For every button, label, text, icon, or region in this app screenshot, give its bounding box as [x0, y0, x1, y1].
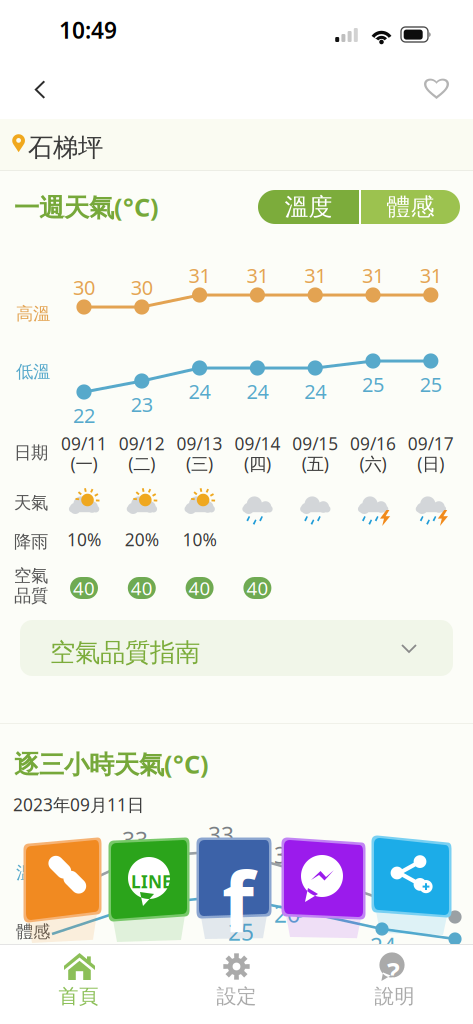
staticText: 31 [304, 262, 326, 289]
staticText: 一週天氣(°C) [14, 190, 159, 224]
staticText: (三) [186, 452, 213, 475]
staticText: 09/16 [350, 432, 396, 455]
staticText: 2023年09月11日 [13, 793, 144, 816]
staticText: 30 [73, 274, 95, 301]
staticText: 09/13 [177, 432, 223, 455]
staticText: 品質 [14, 585, 48, 606]
staticText: 24 [370, 931, 396, 961]
staticText: 23 [131, 391, 153, 418]
staticText: ? [387, 954, 400, 989]
button[interactable]: Share on Messenger [284, 840, 363, 919]
button[interactable]: 體感 [361, 190, 460, 224]
staticText: 10% [183, 528, 217, 551]
staticText: 降雨 [14, 531, 48, 552]
staticText: 體感 [16, 921, 50, 942]
staticText: 40 [73, 576, 95, 600]
staticText: 20% [125, 528, 159, 551]
button[interactable]: 空氣品質指南 [20, 620, 453, 676]
staticText: 30 [131, 274, 153, 301]
staticText: 25 [420, 371, 442, 398]
staticText: 說明 [374, 984, 414, 1009]
button[interactable]: Copy link [26, 838, 99, 922]
button[interactable]: Back [8, 62, 62, 114]
staticText: (一) [70, 452, 97, 475]
staticText: 設定 [216, 984, 256, 1009]
staticText: 日期 [14, 442, 48, 463]
staticText: 40 [246, 576, 268, 600]
staticText: 30 [274, 840, 300, 870]
staticText: 33 [122, 825, 148, 855]
staticText: 40 [189, 576, 211, 600]
staticText: 溫度 [284, 192, 332, 222]
staticText: 空氣品質指南 [50, 637, 200, 668]
button[interactable]: 溫度 [258, 190, 359, 224]
staticText: 首頁 [58, 984, 98, 1009]
staticText: 33 [208, 820, 234, 850]
staticText: 09/17 [408, 432, 454, 455]
button[interactable]: Share on Facebook [199, 838, 269, 918]
staticText: 高溫 [16, 303, 50, 324]
staticText: 石梯坪 [28, 132, 103, 163]
staticText: 40 [131, 576, 153, 600]
staticText: 31 [420, 262, 442, 289]
staticText: 22 [73, 402, 95, 429]
staticText: (日) [417, 452, 444, 475]
staticText: 10% [67, 528, 101, 551]
button[interactable]: More sharing options [374, 838, 449, 917]
staticText: 空氣 [14, 565, 48, 586]
staticText: f [222, 845, 254, 955]
button[interactable]: Share on LINE [111, 838, 187, 921]
staticText: (五) [302, 452, 329, 475]
staticText: 24 [304, 378, 326, 405]
staticText: (二) [128, 452, 155, 475]
staticText: 24 [189, 378, 211, 405]
staticText: 10:49 [59, 15, 117, 45]
staticText: 09/12 [119, 432, 165, 455]
staticText: 31 [362, 262, 384, 289]
staticText: 31 [246, 262, 268, 289]
button[interactable]: Add to favorites [410, 62, 466, 114]
staticText: 31 [189, 262, 211, 289]
staticText: 09/15 [292, 432, 338, 455]
staticText: (四) [244, 452, 271, 475]
staticText: (六) [359, 452, 386, 475]
staticText: 天氣 [14, 492, 48, 513]
button[interactable]: 設定 [158, 945, 315, 1024]
button[interactable]: ? [316, 945, 473, 1024]
staticText: 26 [274, 899, 300, 929]
staticText: 09/14 [234, 432, 280, 455]
staticText: LINE [131, 870, 172, 893]
staticText: 09/11 [61, 432, 107, 455]
staticText: 溫度 [16, 862, 50, 883]
staticText: 體感 [386, 192, 434, 222]
button[interactable]: 首頁 [0, 945, 157, 1024]
staticText: 25 [228, 917, 254, 947]
staticText: 低溫 [16, 361, 50, 382]
staticText: 25 [362, 371, 384, 398]
staticText: 24 [246, 378, 268, 405]
staticText: 逐三小時天氣(°C) [14, 747, 209, 781]
